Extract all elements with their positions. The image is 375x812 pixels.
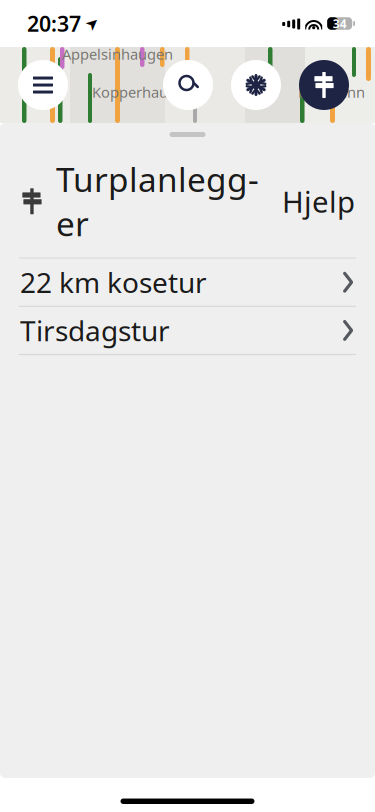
staticText: Appelsinhaugen (62, 44, 173, 64)
button[interactable]: 22 km kosetur (0, 259, 375, 307)
button[interactable]: Hjelp (268, 176, 355, 227)
button[interactable]: Menu (18, 60, 68, 110)
button[interactable]: Tirsdagstur (0, 307, 375, 355)
staticText: 20:37 (27, 9, 81, 38)
staticText: Hjelp (282, 182, 355, 221)
staticText: 34 (333, 15, 347, 31)
staticText: ➤ (85, 14, 98, 33)
button[interactable]: Snow conditions (231, 60, 281, 110)
staticText: Tirsdagstur (20, 312, 170, 349)
button[interactable]: Trip planner (299, 60, 349, 110)
staticText: Turplanlegger (56, 157, 259, 245)
staticText: Langvann (298, 82, 365, 102)
button[interactable]: Search (163, 60, 213, 110)
staticText: 22 km kosetur (20, 264, 207, 301)
staticText: Kopperhaugene (92, 82, 202, 102)
